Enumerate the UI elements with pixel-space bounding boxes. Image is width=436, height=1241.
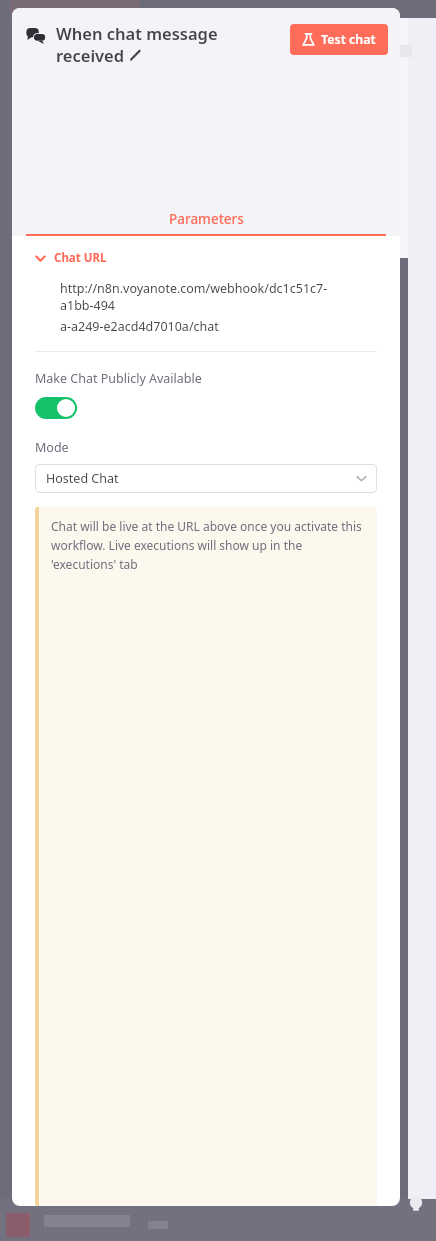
staticText: a-a249-e2acd4d7010a/chat <box>60 318 219 335</box>
button[interactable]: Help <box>404 1193 428 1217</box>
staticText: Chat will be live at the URL above once … <box>51 518 362 534</box>
staticText: Mode <box>35 439 69 456</box>
staticText: Hosted Chat <box>46 470 119 487</box>
staticText: Parameters <box>169 210 244 228</box>
button[interactable]: Make Chat Publicly Available toggle <box>35 397 77 419</box>
button[interactable]: Test chat <box>290 24 388 55</box>
button[interactable]: Hosted Chat <box>35 464 377 493</box>
button[interactable]: Chat URL <box>35 250 107 266</box>
staticText: Test chat <box>321 31 376 48</box>
staticText: When chat message <box>56 22 218 44</box>
staticText: 'executions' tab <box>51 556 138 572</box>
button[interactable]: Rename <box>129 49 142 62</box>
staticText: workflow. Live executions will show up i… <box>51 537 303 553</box>
staticText: Make Chat Publicly Available <box>35 370 202 387</box>
staticText: received <box>56 44 129 66</box>
button[interactable]: Parameters <box>12 204 400 236</box>
staticText: http://n8n.voyanote.com/webhook/dc1c51c7… <box>60 280 377 314</box>
staticText: Chat URL <box>54 250 107 266</box>
